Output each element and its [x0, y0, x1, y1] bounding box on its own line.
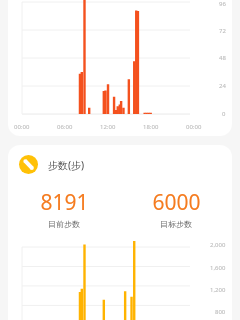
staticText: 00:00: [186, 123, 202, 131]
staticText: 18:00: [143, 123, 159, 131]
staticText: 8191: [40, 188, 89, 217]
staticText: 2,000: [210, 241, 226, 249]
button[interactable]: 8191: [8, 188, 120, 229]
staticText: 72: [219, 27, 226, 35]
button[interactable]: Steps: [8, 145, 232, 320]
staticText: 48: [219, 54, 226, 62]
staticText: 12:00: [100, 123, 116, 131]
staticText: 800: [215, 308, 226, 316]
staticText: 96: [219, 0, 226, 8]
staticText: 目标步数: [160, 219, 192, 229]
staticText: 1,200: [210, 286, 226, 294]
button[interactable]: Steps: [19, 155, 232, 174]
staticText: 目前步数: [48, 219, 80, 229]
other: Steps: [19, 155, 38, 174]
staticText: 1,600: [210, 264, 226, 272]
button[interactable]: 6000: [120, 188, 232, 229]
staticText: 06:00: [57, 123, 73, 131]
staticText: 24: [219, 82, 226, 90]
button[interactable]: 96: [8, 0, 232, 136]
staticText: 步数(步): [48, 158, 85, 172]
staticText: 0: [222, 110, 226, 118]
staticText: 00:00: [14, 123, 30, 131]
staticText: 6000: [152, 188, 201, 217]
